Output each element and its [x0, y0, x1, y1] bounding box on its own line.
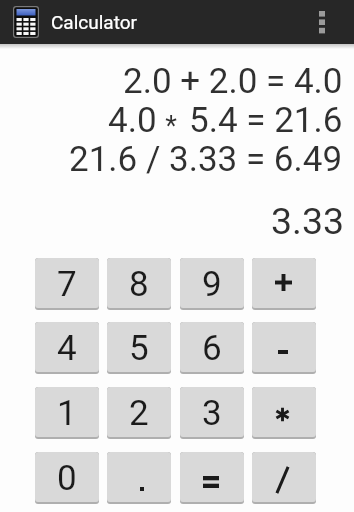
staticText: 2.0 + 2.0 = 4.0	[123, 61, 343, 102]
button[interactable]: 7	[35, 258, 99, 308]
staticText: 21.6 / 3.33 = 6.49	[69, 139, 343, 180]
button[interactable]	[252, 452, 316, 502]
staticText: 1	[57, 393, 77, 434]
staticText: 3	[202, 393, 222, 434]
button[interactable]	[252, 387, 316, 437]
button[interactable]	[310, 0, 354, 44]
button[interactable]: 5	[107, 322, 171, 372]
button[interactable]: 2	[107, 387, 171, 437]
staticText: 7	[57, 264, 77, 305]
button[interactable]	[180, 452, 244, 502]
staticText: 2	[129, 393, 149, 434]
button[interactable]: 4	[35, 322, 99, 372]
button[interactable]: 8	[107, 258, 171, 308]
staticText: 4.0 * 5.4 = 21.6	[108, 100, 343, 142]
button[interactable]	[252, 258, 316, 308]
staticText: 3.33	[271, 199, 345, 243]
button[interactable]: 3	[180, 387, 244, 437]
button[interactable]	[107, 452, 171, 502]
staticText: 9	[202, 264, 222, 305]
staticText: 6	[202, 328, 222, 369]
button[interactable]: 0	[35, 452, 99, 502]
staticText: 4	[57, 328, 77, 369]
button[interactable]: 6	[180, 322, 244, 372]
staticText: 8	[129, 264, 149, 305]
button[interactable]	[252, 322, 316, 372]
button[interactable]: 9	[180, 258, 244, 308]
button[interactable]: 1	[35, 387, 99, 437]
staticText: 5	[129, 328, 149, 369]
staticText: 0	[57, 458, 77, 499]
staticText: Calculator	[51, 11, 138, 33]
